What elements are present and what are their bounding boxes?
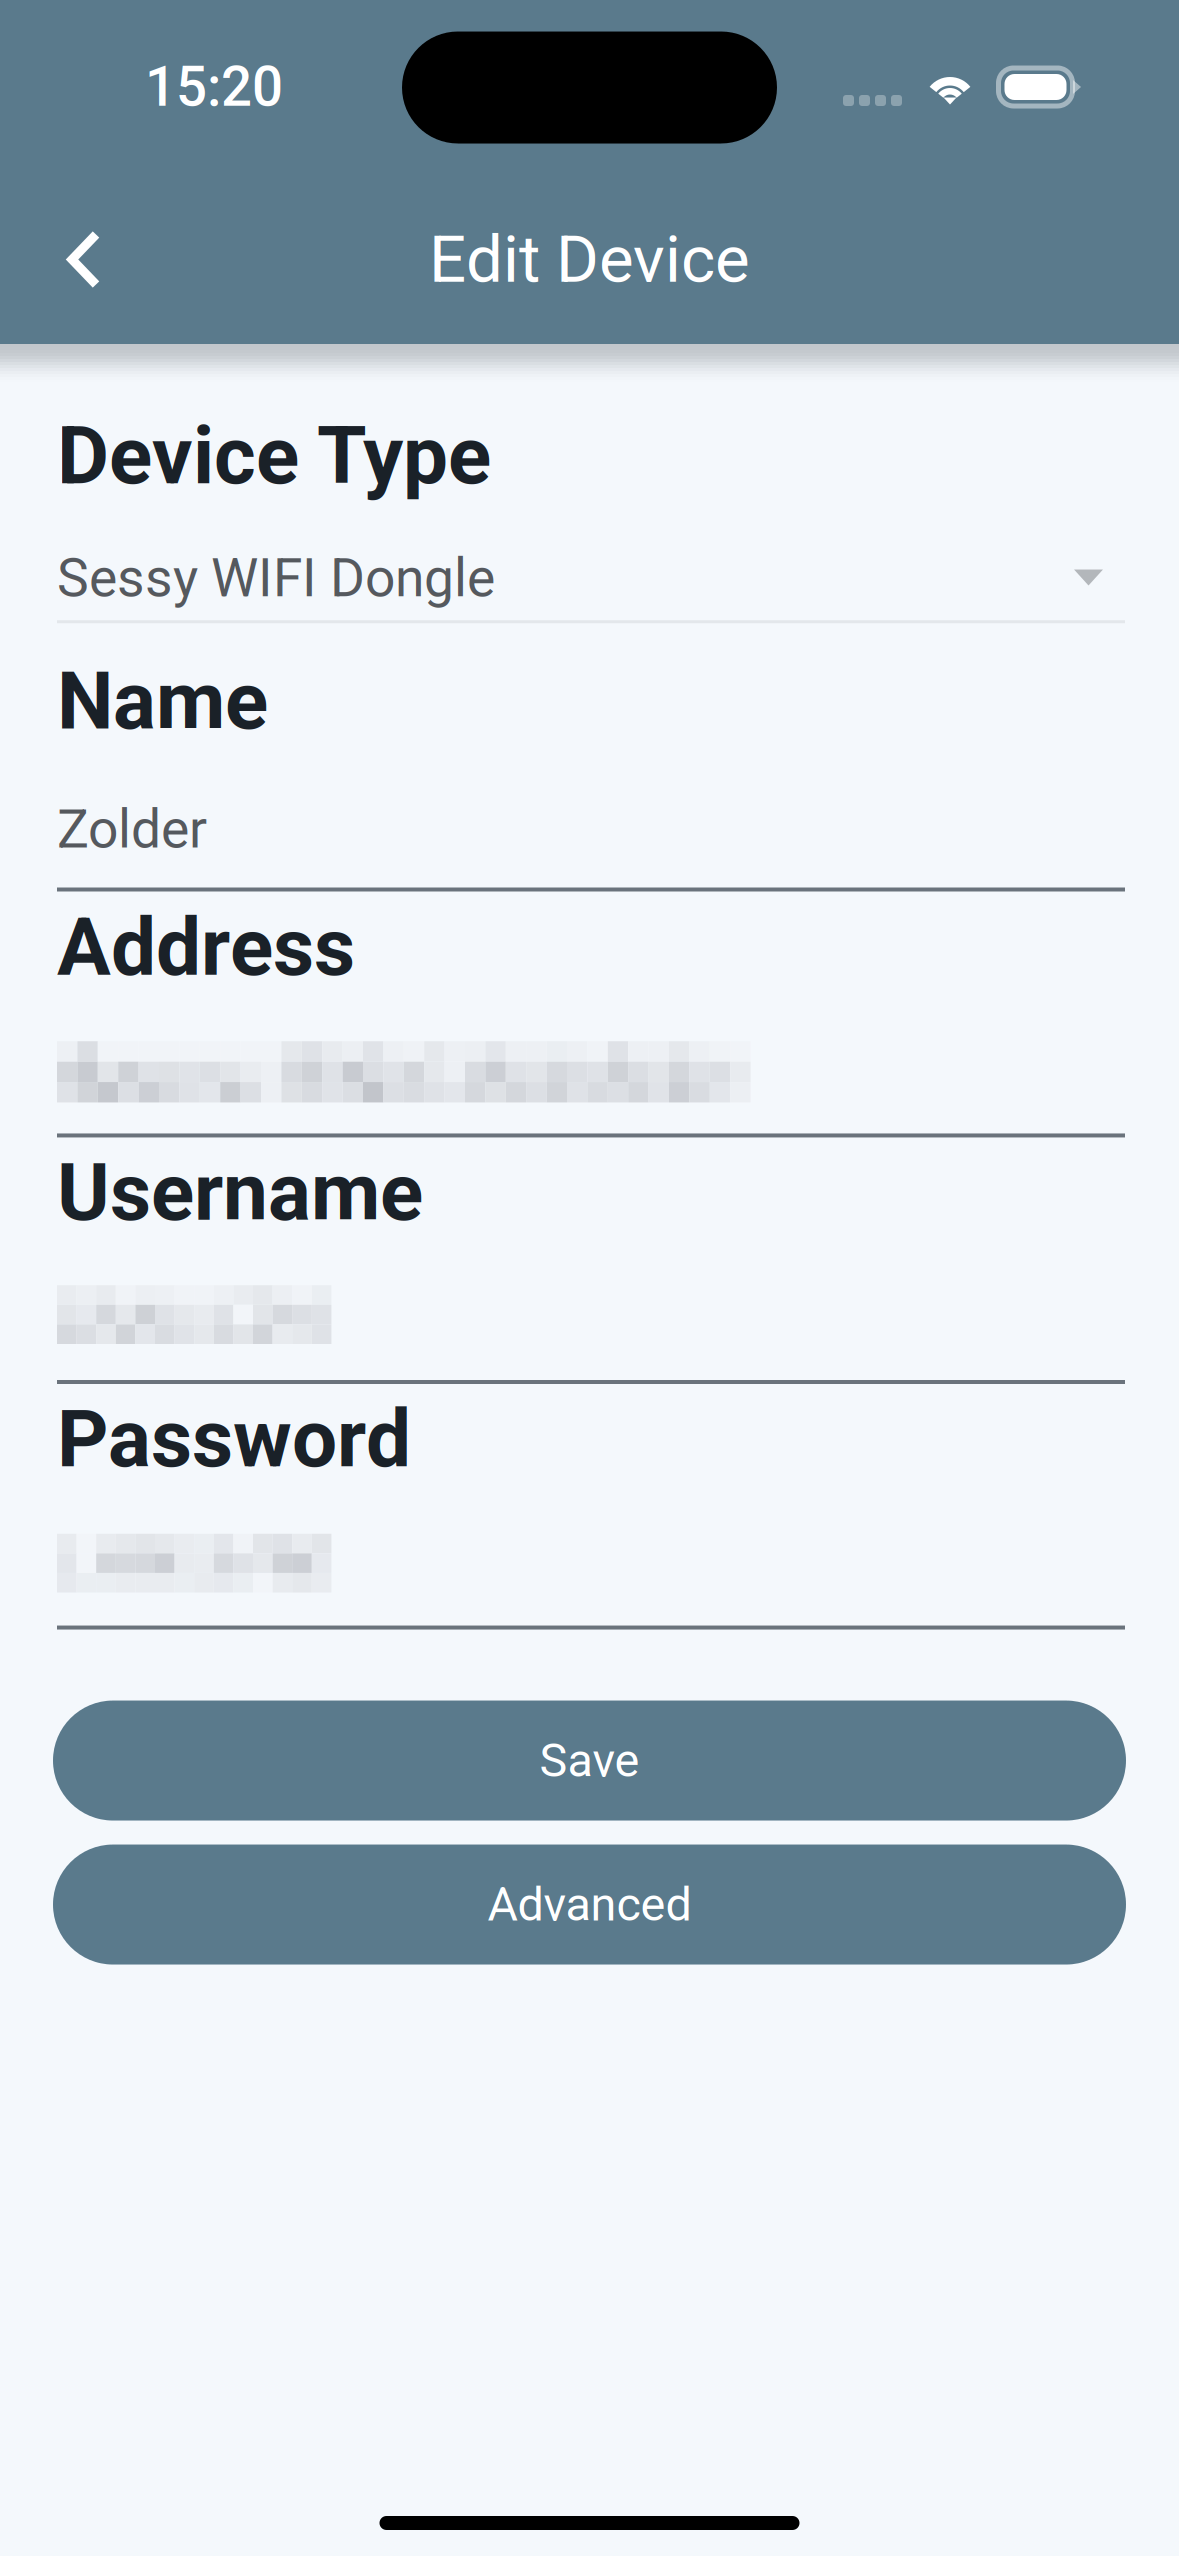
staticText: Zolder xyxy=(57,798,207,860)
staticText: Sessy WIFI Dongle xyxy=(57,547,495,609)
staticText: Device Type xyxy=(57,409,491,503)
staticText: Name xyxy=(57,654,268,748)
staticText: Password xyxy=(57,1392,411,1486)
button[interactable]: Save xyxy=(53,1700,1126,1820)
staticText: Username xyxy=(57,1145,423,1239)
staticText: Advanced xyxy=(487,1877,691,1932)
staticText: Address xyxy=(57,900,355,994)
button[interactable]: Back xyxy=(0,189,168,329)
staticText: Edit Device xyxy=(429,221,750,298)
button[interactable]: Advanced xyxy=(53,1844,1126,1964)
staticText: Save xyxy=(539,1733,639,1788)
button[interactable]: Sessy WIFI Dongle xyxy=(57,547,1125,609)
staticText: 15:20 xyxy=(145,55,283,119)
